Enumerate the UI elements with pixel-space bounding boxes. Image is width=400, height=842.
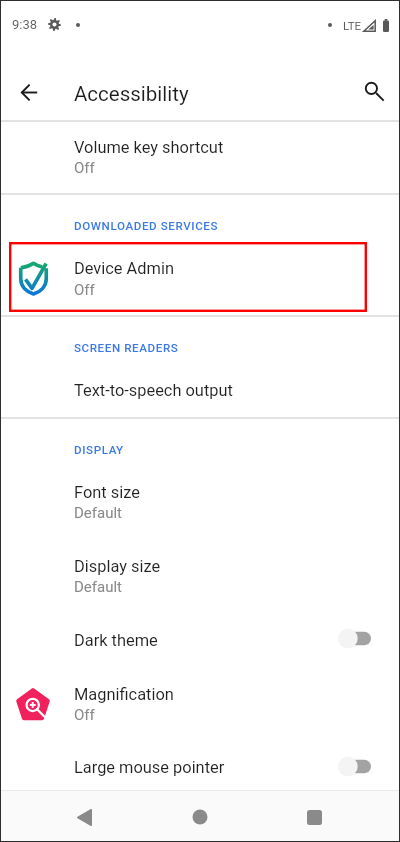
button[interactable]	[0, 466, 400, 534]
button[interactable]	[0, 612, 400, 668]
button[interactable]: Back	[51, 794, 117, 840]
button[interactable]	[0, 121, 400, 192]
staticText: Default	[74, 578, 122, 596]
staticText: Volume key shortcut	[74, 138, 224, 157]
staticText: Dark theme	[74, 631, 158, 650]
staticText: LTE	[343, 19, 362, 32]
button[interactable]	[0, 366, 400, 417]
staticText: 9:38	[12, 17, 38, 32]
staticText: Text-to-speech output	[74, 381, 233, 400]
staticText: DISPLAY	[74, 443, 124, 457]
button[interactable]: Home	[167, 794, 233, 840]
staticText: Accessibility	[74, 82, 189, 106]
button[interactable]: Recent apps	[281, 794, 347, 840]
staticText: SCREEN READERS	[74, 341, 179, 355]
button[interactable]: Search	[354, 72, 394, 112]
button[interactable]	[0, 670, 400, 736]
staticText: Display size	[74, 557, 161, 576]
button[interactable]	[0, 540, 400, 608]
staticText: Large mouse pointer	[74, 758, 225, 777]
staticText: Off	[74, 281, 95, 299]
staticText: Font size	[74, 483, 140, 502]
button[interactable]: Navigate up	[9, 72, 49, 112]
button[interactable]	[0, 738, 400, 790]
button[interactable]	[0, 243, 400, 312]
staticText: Off	[74, 159, 95, 177]
staticText: Magnification	[74, 685, 174, 704]
staticText: Device Admin	[74, 259, 174, 278]
staticText: Default	[74, 504, 122, 522]
staticText: Off	[74, 706, 95, 724]
staticText: DOWNLOADED SERVICES	[74, 219, 219, 233]
